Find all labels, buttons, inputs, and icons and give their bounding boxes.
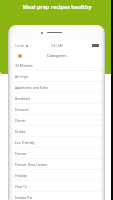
- staticText: 9:41 AM: [51, 44, 63, 48]
- staticText: How To: [15, 184, 27, 189]
- button[interactable]: Desserts: [12, 104, 101, 115]
- button[interactable]: 30 Minutes: [12, 60, 101, 71]
- staticText: Categories: [47, 53, 67, 58]
- staticText: Freezer Slow Cooker: [15, 162, 48, 167]
- button[interactable]: Appetizers and Sides: [12, 82, 101, 93]
- staticText: Eco-Friendly: [15, 140, 35, 145]
- staticText: Carrier: [15, 44, 25, 48]
- button[interactable]: Breakfast: [12, 93, 101, 104]
- button[interactable]: Freezer: [12, 148, 101, 159]
- staticText: Breakfast: [15, 96, 31, 101]
- button[interactable]: Menu: [18, 54, 22, 58]
- staticText: 30 Minutes: [15, 63, 33, 68]
- button[interactable]: How To: [12, 181, 101, 192]
- button[interactable]: Drinks: [12, 126, 101, 137]
- staticText: Freezer: [15, 151, 27, 156]
- button[interactable]: Eco-Friendly: [12, 137, 101, 148]
- button[interactable]: Dinner: [12, 115, 101, 126]
- staticText: Desserts: [15, 107, 29, 112]
- button[interactable]: Freezer Slow Cooker: [12, 159, 101, 170]
- staticText: Air Fryer: [15, 74, 29, 79]
- staticText: Dinner: [15, 118, 26, 123]
- staticText: Holiday: [15, 173, 28, 178]
- button[interactable]: Instant Pot: [12, 192, 101, 200]
- staticText: Instant Pot: [15, 195, 33, 200]
- staticText: Meal prep recipes healthy: [22, 3, 92, 10]
- button[interactable]: Holiday: [12, 170, 101, 181]
- staticText: Drinks: [15, 129, 26, 134]
- button[interactable]: Air Fryer: [12, 71, 101, 82]
- staticText: Appetizers and Sides: [15, 85, 49, 90]
